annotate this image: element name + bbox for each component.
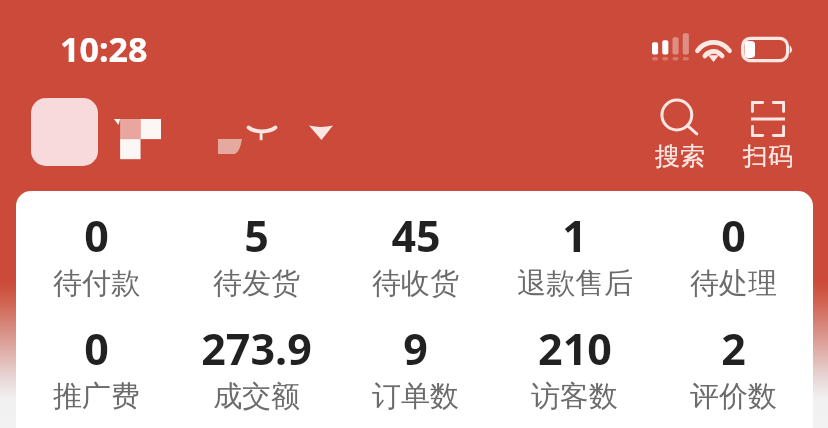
staticText: 9 <box>403 319 428 378</box>
staticText: 273.9 <box>201 319 312 378</box>
button[interactable]: 9 <box>336 319 495 415</box>
staticText: 5 <box>244 206 269 265</box>
button[interactable]: Shop avatar <box>31 98 98 166</box>
staticText: 推广费 <box>53 378 140 415</box>
button[interactable]: Search <box>636 96 724 176</box>
button[interactable]: 1 <box>495 206 654 302</box>
button[interactable]: 210 <box>495 319 654 415</box>
staticText: 退款售后 <box>517 265 633 302</box>
button[interactable]: 273.9 <box>176 319 336 415</box>
staticText: 0 <box>84 206 109 265</box>
staticText: 0 <box>84 319 109 378</box>
button[interactable]: 45 <box>336 206 495 302</box>
staticText: 待收货 <box>372 265 459 302</box>
staticText: 0 <box>721 206 746 265</box>
staticText: 待付款 <box>53 265 140 302</box>
staticText: 45 <box>391 206 441 265</box>
staticText: 访客数 <box>531 378 618 415</box>
staticText: 1 <box>562 206 587 265</box>
staticText: 待发货 <box>213 265 300 302</box>
button[interactable]: 0 <box>654 206 813 302</box>
button[interactable]: 5 <box>176 206 336 302</box>
staticText: 10:28 <box>60 26 148 72</box>
staticText: 210 <box>538 319 612 378</box>
button[interactable]: 0 <box>16 206 176 302</box>
staticText: 成交额 <box>213 378 300 415</box>
staticText: 扫码 <box>743 141 793 172</box>
staticText: 评价数 <box>690 378 777 415</box>
staticText: 订单数 <box>372 378 459 415</box>
staticText: 搜索 <box>655 141 705 172</box>
button[interactable]: 2 <box>654 319 813 415</box>
button[interactable]: 0 <box>16 319 176 415</box>
button[interactable]: Scan <box>724 96 812 176</box>
staticText: 2 <box>721 319 746 378</box>
staticText: 待处理 <box>690 265 777 302</box>
